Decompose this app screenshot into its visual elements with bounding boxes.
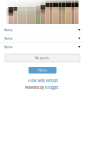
button[interactable]: Home (0, 34, 85, 42)
button[interactable]: Blogger (45, 85, 58, 90)
button[interactable]: Home (0, 43, 85, 51)
staticText: Home (3, 28, 12, 32)
staticText: View web version (27, 78, 57, 83)
button[interactable]: View web version (27, 78, 57, 83)
button[interactable]: Home (28, 67, 56, 73)
staticText: Blogger (45, 85, 58, 90)
staticText: No posts. (35, 56, 50, 60)
staticText: Home (3, 45, 12, 49)
staticText: Home (3, 36, 12, 40)
staticText: . (59, 85, 60, 90)
staticText: Home (38, 68, 47, 72)
button[interactable]: Home (0, 26, 85, 34)
staticText: Powered by (25, 85, 44, 90)
